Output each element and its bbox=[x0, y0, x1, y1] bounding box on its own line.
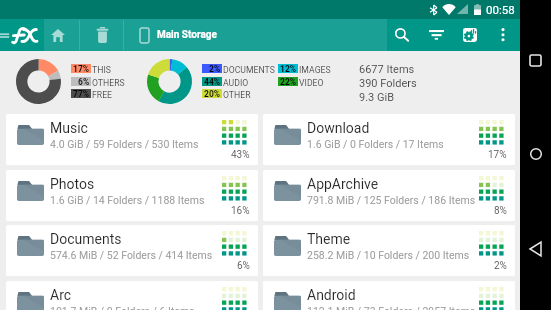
button[interactable]: Documents bbox=[6, 225, 258, 276]
staticText: 43% bbox=[231, 149, 250, 161]
staticText: 00:58 bbox=[486, 3, 515, 16]
staticText: Photos bbox=[50, 176, 95, 192]
staticText: Music bbox=[50, 120, 88, 136]
staticText: 6677 Items bbox=[359, 63, 415, 76]
button[interactable]: Disk analysis bbox=[456, 19, 484, 51]
staticText: 574.6 MiB / 52 Folders / 414 Items bbox=[50, 249, 213, 261]
button[interactable]: More options bbox=[492, 19, 514, 51]
staticText: 20% bbox=[204, 89, 221, 98]
staticText: 2% bbox=[209, 64, 221, 73]
button[interactable]: 12% bbox=[278, 64, 331, 73]
button[interactable]: Delete bbox=[89, 19, 115, 51]
button[interactable]: Back bbox=[520, 233, 551, 265]
button[interactable]: Search bbox=[389, 19, 415, 51]
button[interactable]: 44% bbox=[202, 77, 249, 86]
staticText: 791.8 MiB / 125 Folders / 186 Items bbox=[307, 194, 476, 206]
staticText: Documents bbox=[50, 231, 122, 247]
staticText: 112.1 MiB / 73 Folders / 2957 Items bbox=[307, 305, 476, 310]
button[interactable]: Music bbox=[6, 114, 258, 165]
button[interactable]: 22% bbox=[278, 77, 324, 86]
staticText: 6% bbox=[237, 260, 250, 272]
staticText: 17% bbox=[488, 149, 507, 161]
staticText: Download bbox=[307, 120, 370, 136]
staticText: 16% bbox=[231, 205, 250, 217]
button[interactable]: Main Storage bbox=[132, 19, 217, 51]
button[interactable]: Photos bbox=[6, 170, 258, 221]
button[interactable]: 20% bbox=[202, 89, 251, 98]
button[interactable]: Home bbox=[520, 138, 551, 170]
staticText: 2% bbox=[494, 260, 507, 272]
staticText: 6% bbox=[78, 77, 90, 86]
staticText: OTHER bbox=[223, 90, 251, 99]
button[interactable]: 6% bbox=[71, 77, 125, 86]
button[interactable]: 17% bbox=[71, 64, 111, 73]
staticText: Main Storage bbox=[157, 29, 217, 41]
staticText: Android bbox=[307, 287, 356, 303]
button[interactable]: Recent apps bbox=[520, 44, 551, 76]
button[interactable]: 77% bbox=[71, 89, 113, 98]
staticText: Theme bbox=[307, 231, 351, 247]
staticText: THIS bbox=[92, 65, 111, 74]
staticText: 8% bbox=[494, 205, 507, 217]
button[interactable]: Arc bbox=[6, 281, 258, 310]
staticText: AUDIO bbox=[223, 78, 249, 87]
staticText: AppArchive bbox=[307, 176, 379, 192]
staticText: DOCUMENTS bbox=[223, 65, 275, 74]
staticText: 22% bbox=[280, 77, 297, 86]
button[interactable]: Download bbox=[263, 114, 515, 165]
staticText: 1.6 GiB / 14 Folders / 1188 Items bbox=[50, 194, 205, 206]
staticText: IMAGES bbox=[299, 65, 331, 74]
staticText: FREE bbox=[92, 90, 113, 99]
staticText: 17% bbox=[73, 64, 90, 73]
staticText: Arc bbox=[50, 287, 72, 303]
staticText: 9.3 GiB bbox=[359, 91, 395, 104]
staticText: 12% bbox=[280, 64, 297, 73]
staticText: 4.0 GiB / 59 Folders / 530 Items bbox=[50, 138, 199, 150]
staticText: 390 Folders bbox=[359, 77, 417, 90]
staticText: 101.7 MiB / 0 Folders / 6 Items bbox=[50, 305, 195, 310]
button[interactable]: Open navigation menu bbox=[0, 19, 44, 51]
staticText: VIDEO bbox=[299, 78, 324, 87]
button[interactable]: Android bbox=[263, 281, 515, 310]
staticText: 44% bbox=[204, 77, 221, 86]
button[interactable]: Filter bbox=[423, 19, 450, 51]
staticText: 77% bbox=[73, 89, 90, 98]
button[interactable]: AppArchive bbox=[263, 170, 515, 221]
staticText: OTHERS bbox=[92, 78, 125, 87]
button[interactable]: Theme bbox=[263, 225, 515, 276]
staticText: 258.2 MiB / 10 Folders / 200 Items bbox=[307, 249, 470, 261]
button[interactable]: 2% bbox=[202, 64, 275, 73]
button[interactable]: Home bbox=[45, 19, 71, 51]
staticText: 1.6 GiB / 0 Folders / 17 Items bbox=[307, 138, 444, 150]
